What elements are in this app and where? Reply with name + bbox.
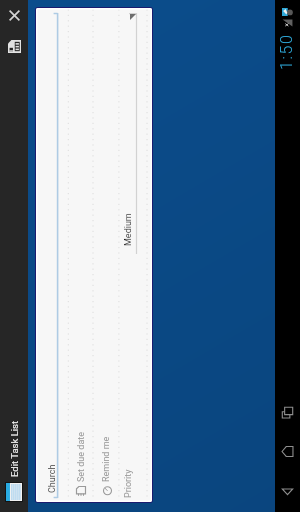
button[interactable]: Set due date <box>69 8 93 502</box>
staticText: Church <box>47 464 58 493</box>
button[interactable]: Home <box>275 432 300 471</box>
button[interactable]: Back <box>275 471 300 510</box>
staticText: Remind me <box>101 436 112 482</box>
staticText: Set due date <box>76 431 87 482</box>
button[interactable]: Save <box>0 31 28 63</box>
staticText: Medium <box>123 213 134 246</box>
button[interactable]: Recent apps <box>275 393 300 432</box>
button[interactable]: Status <box>275 0 300 70</box>
button[interactable]: Cancel <box>0 0 28 31</box>
staticText: 1:50 <box>277 33 296 70</box>
staticText: Priority <box>123 469 134 498</box>
button[interactable]: Remind me <box>94 8 119 502</box>
staticText: Edit Task List <box>9 420 20 477</box>
button[interactable]: Priority <box>119 8 147 502</box>
